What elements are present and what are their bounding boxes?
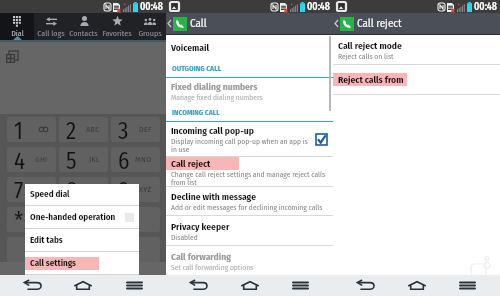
- staticText: One-handed operation: [30, 212, 116, 223]
- button[interactable]: [59, 237, 108, 262]
- staticText: Manage fixed dialing numbers: [171, 93, 263, 102]
- button[interactable]: Call forwarding: [166, 246, 333, 275]
- staticText: Favorites: [102, 29, 132, 39]
- staticText: Disabled: [171, 233, 198, 242]
- button[interactable]: Decline with message: [166, 187, 333, 216]
- button[interactable]: Call settings: [25, 252, 134, 274]
- staticText: Call reject: [171, 158, 211, 169]
- staticText: 00:48: [474, 1, 498, 13]
- button[interactable]: Back: [335, 20, 338, 27]
- button[interactable]: Call reject mode: [333, 35, 500, 65]
- staticText: XYZ: [139, 185, 152, 195]
- staticText: Edit tabs: [30, 235, 63, 246]
- staticText: 5: [66, 147, 77, 172]
- staticText: Reject calls on list: [338, 52, 394, 61]
- staticText: Call reject: [357, 17, 402, 30]
- staticText: 3: [118, 117, 129, 142]
- staticText: 1: [14, 117, 23, 142]
- button[interactable]: Home: [65, 275, 101, 296]
- button[interactable]: Back: [348, 275, 384, 296]
- staticText: Groups: [138, 29, 162, 39]
- staticText: Change call reject settings and manage r…: [171, 170, 326, 186]
- button[interactable]: Reject calls from: [333, 65, 500, 95]
- staticText: Call forwarding: [171, 251, 231, 262]
- button[interactable]: Edit tabs: [25, 229, 134, 251]
- staticText: PQRS: [29, 185, 48, 195]
- staticText: 00:48: [140, 1, 164, 13]
- button[interactable]: [111, 237, 160, 262]
- button[interactable]: [7, 237, 56, 262]
- staticText: Fixed dialing numbers: [171, 81, 258, 92]
- button[interactable]: Voicemail: [166, 35, 333, 59]
- button[interactable]: 9: [111, 177, 160, 202]
- staticText: Decline with message: [171, 191, 256, 202]
- button[interactable]: Call app: [173, 17, 187, 31]
- button[interactable]: 3: [111, 117, 160, 142]
- staticText: Reject calls from: [338, 74, 404, 85]
- button[interactable]: One-handed operation: [25, 206, 134, 228]
- button[interactable]: Call logs: [34, 13, 67, 40]
- button[interactable]: Speed dial: [25, 184, 134, 205]
- button[interactable]: Back: [181, 275, 217, 296]
- button[interactable]: Home: [399, 275, 435, 296]
- staticText: DEF: [139, 125, 152, 135]
- button[interactable]: 5: [59, 147, 108, 172]
- button[interactable]: 0: [59, 207, 108, 232]
- staticText: Dial: [11, 29, 24, 39]
- staticText: Speed dial: [30, 189, 70, 200]
- button[interactable]: Call reject: [166, 157, 333, 187]
- button[interactable]: Menu: [449, 275, 485, 296]
- staticText: Incoming call pop-up: [171, 125, 254, 136]
- button[interactable]: Dial: [0, 13, 34, 40]
- button[interactable]: Menu: [116, 275, 152, 296]
- staticText: JKL: [89, 155, 100, 165]
- button[interactable]: *: [7, 207, 56, 232]
- staticText: 8: [66, 177, 78, 202]
- staticText: GHI: [35, 155, 48, 165]
- button[interactable]: 1: [7, 117, 56, 142]
- staticText: Call settings: [30, 258, 77, 269]
- staticText: 9: [118, 177, 130, 202]
- staticText: 7: [14, 177, 24, 202]
- button[interactable]: 6: [111, 147, 160, 172]
- staticText: OUTGOING CALL: [172, 64, 222, 73]
- staticText: 00:48: [307, 1, 331, 13]
- staticText: ABC: [86, 125, 100, 135]
- button[interactable]: 8: [59, 177, 108, 202]
- staticText: 4: [14, 147, 26, 172]
- button[interactable]: Fixed dialing numbers: [166, 78, 333, 104]
- button[interactable]: Menu: [282, 275, 318, 296]
- button[interactable]: Contacts: [67, 13, 100, 40]
- button[interactable]: Groups: [133, 13, 166, 40]
- button[interactable]: 2: [59, 117, 108, 142]
- staticText: 0: [66, 207, 78, 232]
- staticText: Call logs: [37, 29, 65, 39]
- button[interactable]: Back: [15, 275, 51, 296]
- staticText: Contacts: [69, 29, 98, 39]
- staticText: Set call forwarding options: [171, 263, 254, 272]
- staticText: +: [96, 215, 100, 225]
- staticText: Voicemail: [171, 42, 210, 53]
- staticText: *: [14, 207, 24, 232]
- staticText: 6: [118, 147, 130, 172]
- button[interactable]: #: [111, 207, 160, 232]
- button[interactable]: 4: [7, 147, 56, 172]
- staticText: #: [118, 207, 129, 232]
- staticText: MNO: [135, 155, 152, 165]
- staticText: Add or edit messages for declining incom…: [171, 203, 323, 212]
- button[interactable]: Incoming call pop-up: [166, 122, 333, 157]
- staticText: Call: [190, 17, 207, 30]
- button[interactable]: Favorites: [100, 13, 133, 40]
- button[interactable]: Call app: [340, 17, 354, 31]
- staticText: 2: [66, 117, 77, 142]
- staticText: INCOMING CALL: [172, 108, 220, 117]
- button[interactable]: Back: [168, 20, 171, 27]
- button[interactable]: Home: [232, 275, 268, 296]
- button[interactable]: Privacy keeper: [166, 216, 333, 246]
- staticText: Call reject mode: [338, 40, 402, 51]
- button[interactable]: 7: [7, 177, 56, 202]
- staticText: Display incoming call pop-up when an app…: [171, 137, 308, 154]
- staticText: Privacy keeper: [171, 221, 230, 232]
